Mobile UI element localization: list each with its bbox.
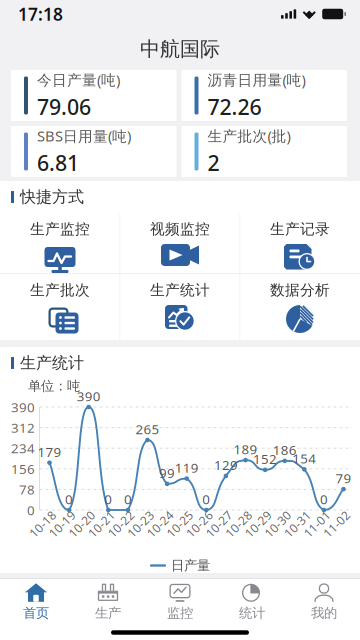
staticText: 10-25 [164,516,196,532]
staticText: 0 [202,490,210,508]
button[interactable]: 今日产量(吨) [11,70,176,121]
button[interactable]: 生产监控 [0,213,119,273]
staticText: 单位：吨 [28,378,80,394]
staticText: 390 [11,398,35,416]
staticText: 129 [214,456,238,474]
staticText: 日产量 [171,557,210,574]
staticText: 179 [37,443,61,461]
staticText: 72.26 [207,93,261,121]
staticText: 312 [11,419,35,436]
staticText: 快捷方式 [20,187,84,207]
staticText: 156 [11,460,35,478]
staticText: 154 [292,449,316,467]
staticText: 265 [135,420,159,438]
button[interactable]: SBS日用量(吨) [11,126,176,177]
staticText: 6.81 [37,149,79,177]
staticText: 10-23 [124,516,156,532]
staticText: 0 [320,490,328,508]
staticText: 0 [27,501,35,519]
staticText: 10-31 [281,516,313,532]
staticText: 生产统计 [150,281,210,299]
staticText: 今日产量(吨) [37,70,120,90]
staticText: 79 [335,469,351,487]
staticText: SBS日用量(吨) [37,126,131,146]
staticText: 我的 [311,605,337,621]
staticText: 监控 [167,605,193,621]
staticText: 生产统计 [20,353,84,373]
staticText: 生产监控 [30,220,90,238]
staticText: 统计 [239,605,265,621]
staticText: 2 [207,149,219,177]
button[interactable]: 生产 [72,579,144,625]
staticText: 中航国际 [140,37,220,61]
button[interactable]: 首页 [0,579,72,625]
staticText: 10-21 [85,516,117,532]
staticText: 10-20 [66,516,98,532]
button[interactable]: 生产批次 [0,274,119,340]
staticText: 生产记录 [270,220,330,238]
button[interactable]: 生产批次(批) [181,126,347,177]
staticText: 78 [19,480,35,498]
staticText: 10-24 [144,516,176,532]
staticText: 234 [11,439,35,457]
staticText: 10-26 [183,516,215,532]
button[interactable]: 生产统计 [120,274,239,340]
staticText: 17:18 [18,2,63,25]
staticText: 生产批次(批) [207,126,290,146]
staticText: 10-18 [26,516,58,532]
staticText: 186 [273,441,297,459]
staticText: 79.06 [37,93,91,121]
staticText: 视频监控 [150,220,210,238]
staticText: 生产 [95,605,121,621]
staticText: 390 [77,387,101,405]
staticText: 10-29 [242,516,274,532]
staticText: 152 [253,450,277,468]
button[interactable]: 监控 [144,579,216,625]
staticText: 10-30 [262,516,294,532]
staticText: 生产批次 [30,281,90,299]
button[interactable]: 沥青日用量(吨) [181,70,347,121]
staticText: 10-19 [46,516,78,532]
staticText: 0 [104,490,112,508]
staticText: 0 [65,490,73,508]
staticText: 11-01 [301,516,333,532]
button[interactable]: 数据分析 [240,274,359,340]
staticText: 10-27 [203,516,235,532]
staticText: 10-22 [105,516,137,532]
staticText: 数据分析 [270,281,330,299]
staticText: 189 [233,440,257,458]
staticText: 99 [159,464,175,482]
staticText: 119 [175,459,199,476]
button[interactable]: 视频监控 [120,213,239,273]
staticText: 沥青日用量(吨) [207,70,305,90]
staticText: 11-02 [320,516,352,532]
button[interactable]: 统计 [216,579,288,625]
staticText: 0 [124,490,132,508]
staticText: 首页 [23,605,49,621]
staticText: 10-28 [222,516,254,532]
button[interactable]: 我的 [288,579,360,625]
button[interactable]: 生产记录 [240,213,359,273]
